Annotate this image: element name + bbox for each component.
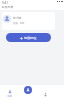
button[interactable]: Add friend bbox=[24, 86, 32, 94]
button[interactable]: 消息 bbox=[4, 90, 16, 97]
button[interactable]: 好友列表 bbox=[2, 5, 14, 9]
staticText: 添加好友 bbox=[24, 36, 37, 40]
staticText: 消息 bbox=[7, 94, 13, 97]
button[interactable]: 添加好友 bbox=[6, 33, 51, 42]
button[interactable]: Profile bbox=[42, 91, 49, 98]
staticText: 9:41 bbox=[2, 1, 8, 5]
button[interactable]: 张小明 bbox=[2, 12, 55, 30]
staticText: 在线 · 手机 bbox=[13, 21, 25, 24]
staticText: 张小明 bbox=[13, 16, 22, 20]
